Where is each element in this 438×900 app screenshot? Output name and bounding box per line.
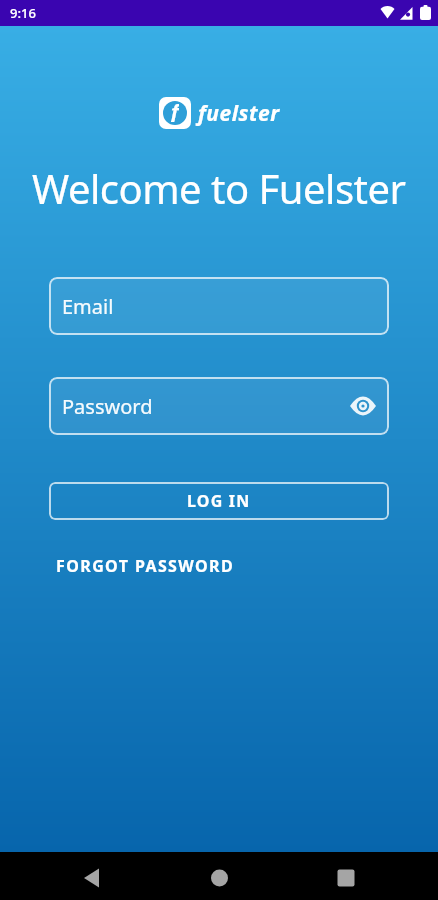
button[interactable]: Email <box>49 277 389 335</box>
staticText: Email <box>62 293 114 320</box>
staticText: 9:16 <box>10 4 36 22</box>
button[interactable] <box>146 852 292 900</box>
staticText: Password <box>62 393 153 420</box>
staticText: LOG IN <box>187 490 251 512</box>
button[interactable]: Password <box>49 377 389 435</box>
button[interactable] <box>292 852 438 900</box>
staticText: f <box>171 101 179 122</box>
button[interactable]: LOG IN <box>49 482 389 520</box>
staticText: Welcome to Fuelster <box>32 161 406 215</box>
button[interactable] <box>0 852 146 900</box>
staticText: fuelster <box>198 99 280 128</box>
button[interactable]: FORGOT PASSWORD <box>56 555 235 577</box>
